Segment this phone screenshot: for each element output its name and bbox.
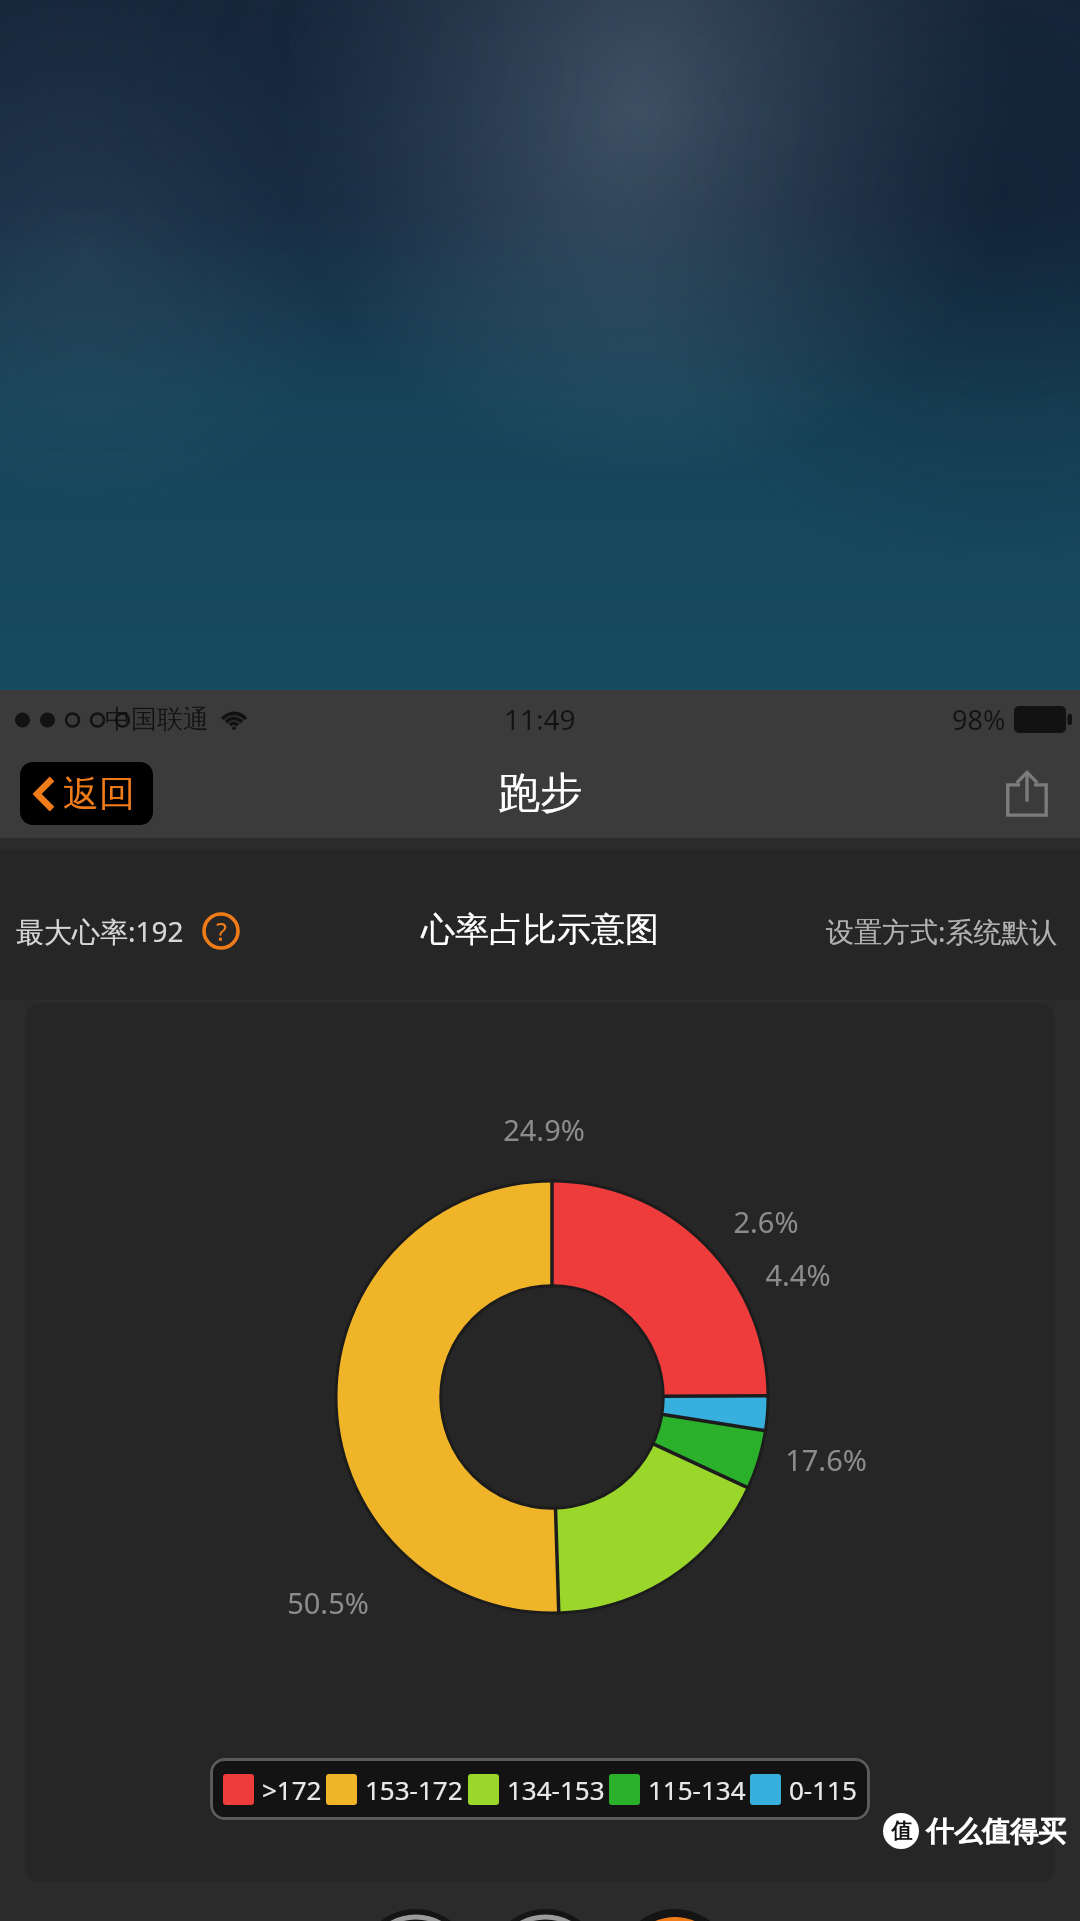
staticText: 2.6%: [706, 1202, 826, 1241]
button[interactable]: Help: [200, 910, 242, 952]
staticText: 0-115: [789, 1772, 857, 1807]
button[interactable]: 返回: [20, 762, 153, 825]
staticText: 115-134: [648, 1772, 746, 1807]
staticText: 返回: [63, 771, 135, 816]
staticText: 什么值得买: [926, 1814, 1066, 1849]
staticText: 98%: [952, 701, 1006, 738]
staticText: 24.9%: [484, 1110, 604, 1149]
staticText: 11:49: [504, 700, 576, 738]
staticText: 最大心率:192: [16, 912, 184, 950]
staticText: 17.6%: [766, 1440, 886, 1479]
staticText: 50.5%: [268, 1583, 388, 1622]
staticText: >172: [262, 1772, 322, 1807]
button[interactable]: Share: [994, 760, 1060, 826]
staticText: 跑步: [498, 767, 582, 820]
staticText: ?: [216, 914, 227, 948]
staticText: 设置方式:系统默认: [826, 912, 1058, 950]
staticText: 值: [891, 1818, 912, 1844]
button[interactable]: 设置方式:系统默认: [826, 912, 1058, 950]
staticText: 4.4%: [738, 1255, 858, 1294]
staticText: 153-172: [365, 1772, 463, 1807]
staticText: 134-153: [507, 1772, 605, 1807]
staticText: 心率占比示意图: [421, 908, 659, 951]
staticText: 中国联通: [105, 703, 209, 736]
